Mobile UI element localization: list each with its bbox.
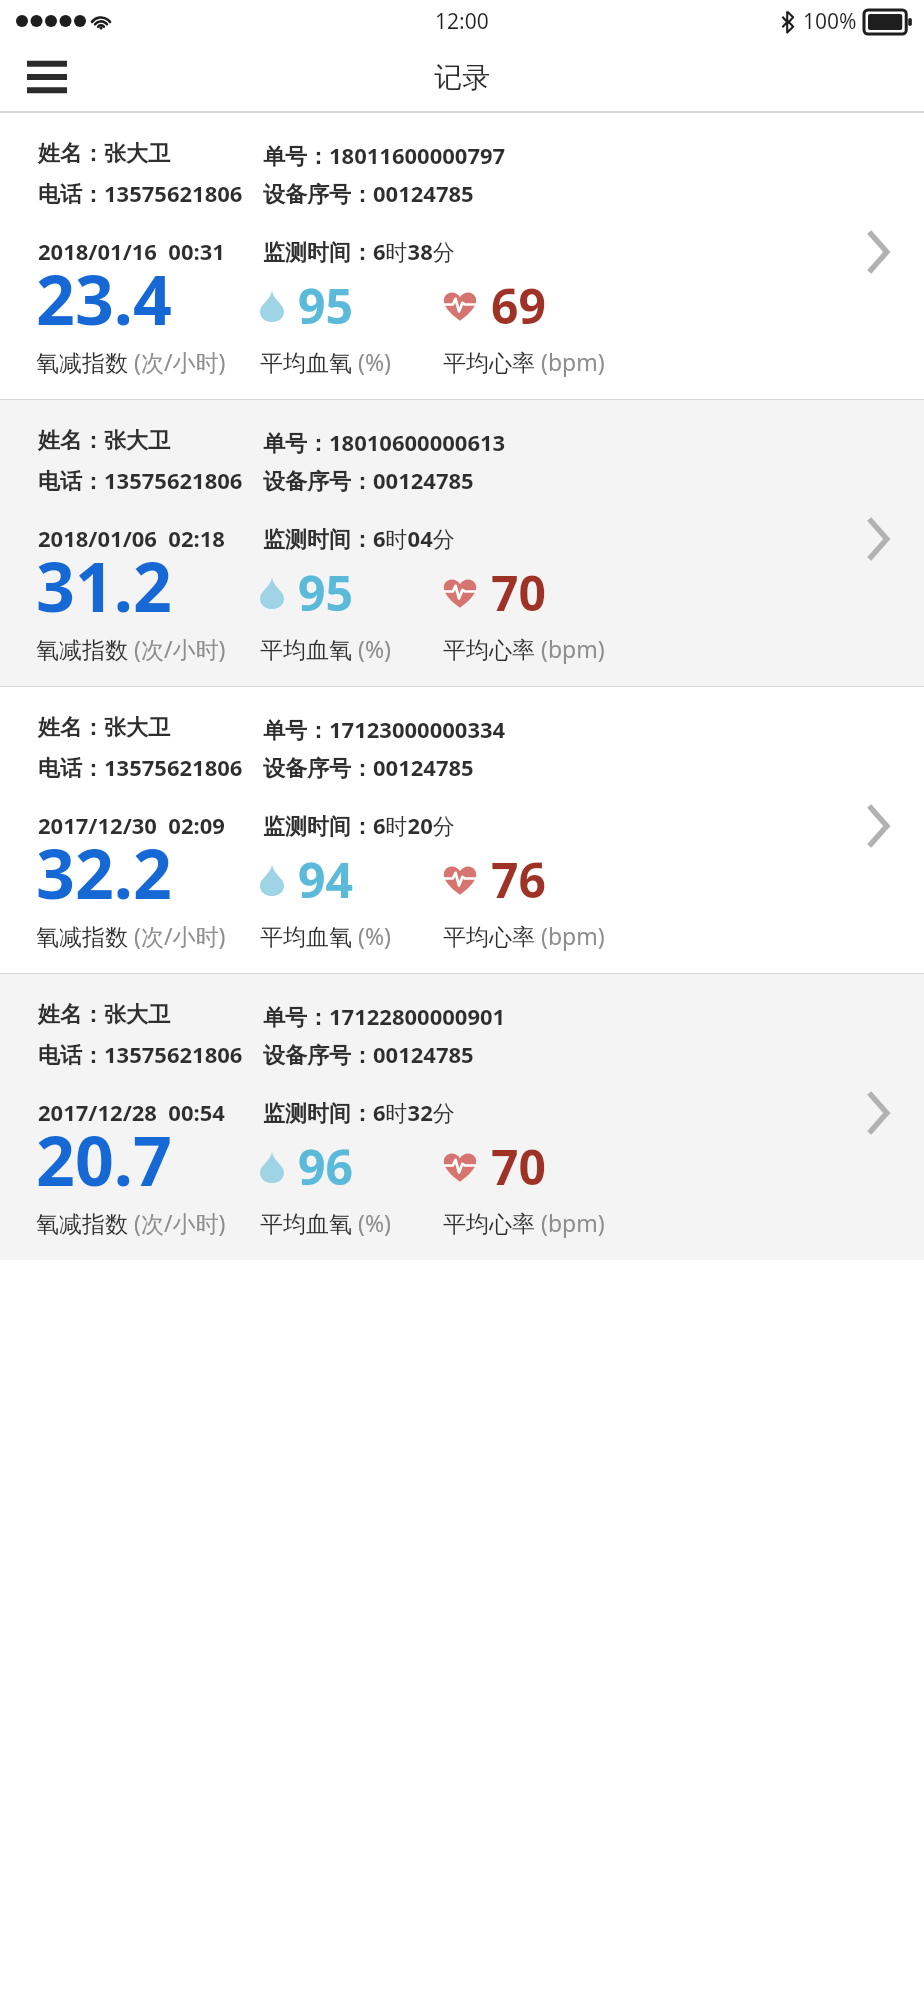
button[interactable]: Open detail (846, 1081, 910, 1145)
staticText: 电话：13575621806 (38, 752, 243, 782)
button[interactable]: 姓名：张大卫 (0, 112, 924, 399)
staticText: 2017/12/30 02:09 (38, 810, 225, 840)
staticText: 12:00 (435, 7, 489, 36)
button[interactable]: Menu (16, 46, 78, 108)
staticText: 32.2 (36, 826, 172, 919)
staticText: 设备序号：00124785 (263, 752, 474, 782)
button[interactable]: 姓名：张大卫 (0, 399, 924, 686)
staticText: 平均心率 (bpm) (443, 633, 605, 664)
button[interactable]: Open detail (846, 507, 910, 571)
staticText: 电话：13575621806 (38, 1039, 243, 1069)
staticText: 记录 (434, 60, 490, 95)
staticText: 2018/01/16 00:31 (38, 236, 225, 266)
staticText: 2017/12/28 00:54 (38, 1097, 225, 1127)
staticText: 监测时间：6时38分 (263, 236, 455, 266)
staticText: 平均血氧 (%) (260, 633, 391, 664)
button[interactable]: Open detail (846, 794, 910, 858)
button[interactable]: 姓名：张大卫 (0, 686, 924, 973)
staticText: 设备序号：00124785 (263, 1039, 474, 1069)
staticText: 20.7 (36, 1113, 172, 1206)
staticText: 单号：17123000000334 (263, 714, 506, 744)
staticText: 设备序号：00124785 (263, 465, 474, 495)
staticText: 设备序号：00124785 (263, 178, 474, 208)
staticText: 70 (491, 560, 546, 625)
staticText: 23.4 (36, 252, 172, 345)
staticText: 70 (491, 1134, 546, 1199)
staticText: 监测时间：6时04分 (263, 523, 455, 553)
staticText: 31.2 (36, 539, 172, 632)
staticText: 电话：13575621806 (38, 178, 243, 208)
staticText: 69 (491, 273, 546, 338)
staticText: 平均血氧 (%) (260, 920, 391, 951)
staticText: 76 (491, 847, 546, 912)
staticText: 监测时间：6时20分 (263, 810, 455, 840)
staticText: 氧减指数 (次/小时) (36, 1207, 226, 1238)
staticText: 平均血氧 (%) (260, 346, 391, 377)
staticText: 单号：18010600000613 (263, 427, 506, 457)
staticText: 95 (298, 560, 353, 625)
staticText: 平均血氧 (%) (260, 1207, 391, 1238)
staticText: 100% (803, 7, 857, 36)
button[interactable]: 姓名：张大卫 (0, 973, 924, 1260)
staticText: 94 (298, 847, 353, 912)
staticText: 氧减指数 (次/小时) (36, 633, 226, 664)
staticText: 平均心率 (bpm) (443, 920, 605, 951)
staticText: 2018/01/06 02:18 (38, 523, 225, 553)
staticText: 平均心率 (bpm) (443, 1207, 605, 1238)
staticText: 氧减指数 (次/小时) (36, 346, 226, 377)
staticText: 电话：13575621806 (38, 465, 243, 495)
staticText: 姓名：张大卫 (38, 1001, 170, 1029)
staticText: 氧减指数 (次/小时) (36, 920, 226, 951)
staticText: 姓名：张大卫 (38, 140, 170, 168)
staticText: 姓名：张大卫 (38, 427, 170, 455)
staticText: 95 (298, 273, 353, 338)
staticText: 平均心率 (bpm) (443, 346, 605, 377)
staticText: 单号：18011600000797 (263, 140, 506, 170)
staticText: 姓名：张大卫 (38, 714, 170, 742)
staticText: 单号：17122800000901 (263, 1001, 506, 1031)
staticText: 96 (298, 1134, 353, 1199)
staticText: 监测时间：6时32分 (263, 1097, 455, 1127)
button[interactable]: Open detail (846, 220, 910, 284)
